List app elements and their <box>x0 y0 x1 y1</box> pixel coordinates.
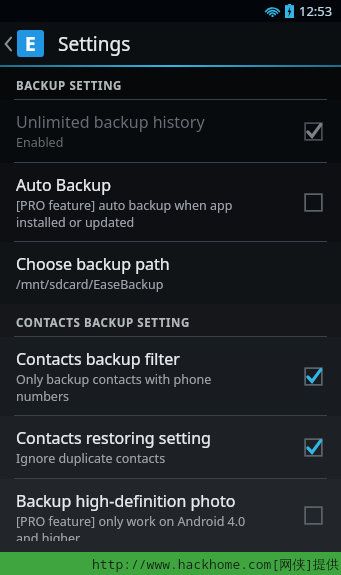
button[interactable]: Contacts backup filter <box>0 337 341 416</box>
staticText: Auto Backup <box>16 174 112 196</box>
staticText: Enabled <box>16 134 64 151</box>
staticText: Contacts backup filter <box>16 348 180 370</box>
staticText: Unlimited backup history <box>16 111 205 133</box>
staticText: Backup high-definition photo <box>16 490 236 512</box>
button[interactable]: Back to Ease Backup <box>0 22 48 65</box>
staticText: http://www.hackhome.com[网侠]提供 <box>91 555 339 573</box>
staticText: Ignore duplicate contacts <box>16 450 166 467</box>
staticText: [PRO feature] only work on Android 4.0 a… <box>16 513 246 541</box>
staticText: E <box>25 31 36 57</box>
staticText: /mnt/sdcard/EaseBackup <box>16 276 164 293</box>
button[interactable]: Backup high-definition photo <box>0 479 341 552</box>
button[interactable]: Contacts restoring setting <box>0 416 341 479</box>
button[interactable]: Choose backup path <box>0 242 341 304</box>
staticText: Settings <box>58 31 131 57</box>
button[interactable]: Unlimited backup history <box>0 100 341 163</box>
staticText: 12:53 <box>299 2 333 20</box>
button[interactable]: Auto Backup <box>0 163 341 242</box>
staticText: CONTACTS BACKUP SETTING <box>16 315 190 331</box>
staticText: Only backup contacts with phone numbers <box>16 371 212 404</box>
staticText: Contacts restoring setting <box>16 427 211 449</box>
staticText: BACKUP SETTING <box>16 78 123 94</box>
staticText: Choose backup path <box>16 253 170 275</box>
staticText: [PRO feature] auto backup when app insta… <box>16 197 233 230</box>
